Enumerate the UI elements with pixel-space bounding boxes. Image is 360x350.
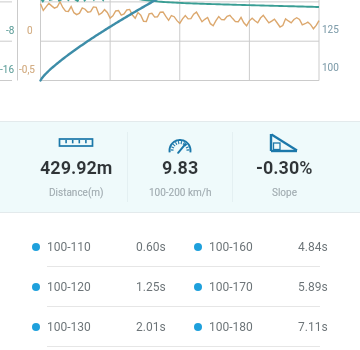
other: Slope (267, 132, 301, 153)
button[interactable]: 100-110 (18, 227, 180, 267)
staticText: 0.60s (136, 240, 166, 254)
button[interactable]: Distance (24, 122, 128, 212)
button[interactable]: 100-120 (18, 267, 180, 307)
staticText: -8 (6, 25, 15, 37)
staticText: 100-160 (209, 240, 253, 254)
staticText: 5.89s (298, 280, 328, 294)
staticText: 2.01s (136, 320, 166, 334)
staticText: 100-170 (209, 280, 253, 294)
staticText: 0 (27, 25, 33, 37)
staticText: 100 (322, 62, 339, 74)
staticText: 9.83 (162, 157, 199, 178)
staticText: -16 (0, 64, 15, 76)
staticText: 100-120 (47, 280, 91, 294)
staticText: 4.84s (298, 240, 328, 254)
staticText: 7.11s (298, 320, 328, 334)
staticText: 429.92m (40, 157, 113, 178)
staticText: 1.25s (136, 280, 166, 294)
staticText: 100-180 (209, 320, 253, 334)
staticText: Distance(m) (49, 187, 104, 199)
button[interactable]: 100-170 (180, 267, 342, 307)
button[interactable]: 100-160 (180, 227, 342, 267)
staticText: -0,5 (19, 64, 35, 76)
staticText: -0.30% (256, 157, 313, 178)
other: Distance (59, 132, 93, 153)
button[interactable]: Acceleration (128, 122, 232, 212)
other: Acceleration (163, 132, 197, 153)
staticText: Slope (272, 187, 297, 199)
staticText: 100-200 km/h (149, 187, 212, 199)
button[interactable]: Slope (232, 122, 336, 212)
staticText: 100-110 (47, 240, 91, 254)
staticText: 125 (322, 24, 339, 36)
staticText: 100-130 (47, 320, 91, 334)
button[interactable]: 100-180 (180, 307, 342, 347)
button[interactable]: 100-130 (18, 307, 180, 347)
